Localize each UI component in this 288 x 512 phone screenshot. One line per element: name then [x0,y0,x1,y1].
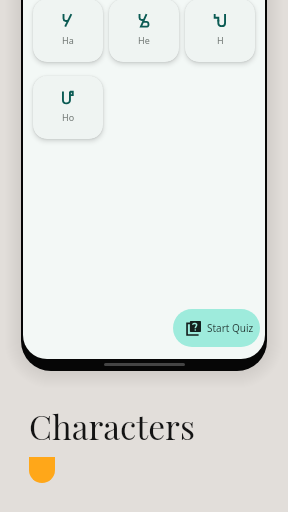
staticText: H [217,34,224,46]
button[interactable]: H [185,0,255,62]
button[interactable]: Ho [33,76,103,139]
staticText: He [138,34,150,46]
staticText: Start Quiz [207,321,254,335]
button[interactable]: Quiz [173,309,260,347]
button[interactable]: He [109,0,179,62]
button[interactable]: Ha [33,0,103,62]
staticText: Ha [62,34,74,46]
other: Quiz [186,321,201,336]
staticText: Characters [29,404,195,449]
staticText: Ho [62,111,75,123]
